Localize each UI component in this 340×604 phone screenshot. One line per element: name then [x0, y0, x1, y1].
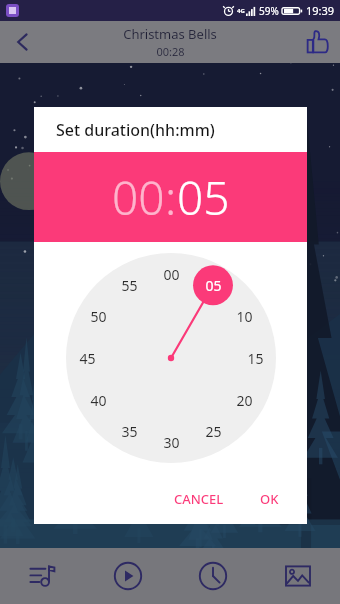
staticText: 20 [236, 391, 253, 410]
staticText: 30 [163, 433, 180, 452]
button[interactable]: Images [255, 548, 340, 604]
button[interactable]: 00 [112, 166, 165, 229]
button[interactable]: Minute picker [66, 253, 276, 463]
staticText: 15 [247, 349, 264, 368]
staticText: 59% [259, 4, 279, 18]
staticText: Christmas Bells [123, 25, 217, 43]
staticText: 00 [163, 265, 180, 284]
button[interactable]: CANCEL [164, 482, 234, 516]
staticText: 05 [177, 166, 230, 229]
staticText: 00:28 [156, 44, 185, 59]
staticText: 10 [236, 307, 253, 326]
staticText: CANCEL [174, 490, 224, 508]
staticText: 25 [205, 422, 222, 441]
staticText: 4G [237, 7, 245, 15]
button[interactable]: Timer [170, 548, 255, 604]
button[interactable]: Back [0, 21, 46, 63]
staticText: 35 [121, 422, 138, 441]
staticText: 55 [121, 276, 138, 295]
button[interactable]: Like [294, 21, 340, 63]
staticText: : [165, 166, 177, 229]
staticText: 05 [205, 276, 222, 295]
button[interactable]: 05 [177, 166, 230, 229]
staticText: 00 [112, 166, 165, 229]
button[interactable]: Playlist [0, 548, 85, 604]
staticText: 50 [90, 307, 107, 326]
button[interactable]: OK [250, 482, 289, 516]
staticText: 19:39 [306, 3, 335, 18]
staticText: 45 [79, 349, 96, 368]
staticText: 40 [90, 391, 107, 410]
staticText: Set duration(hh:mm) [56, 119, 215, 141]
staticText: OK [260, 490, 279, 508]
button[interactable]: Play [85, 548, 170, 604]
